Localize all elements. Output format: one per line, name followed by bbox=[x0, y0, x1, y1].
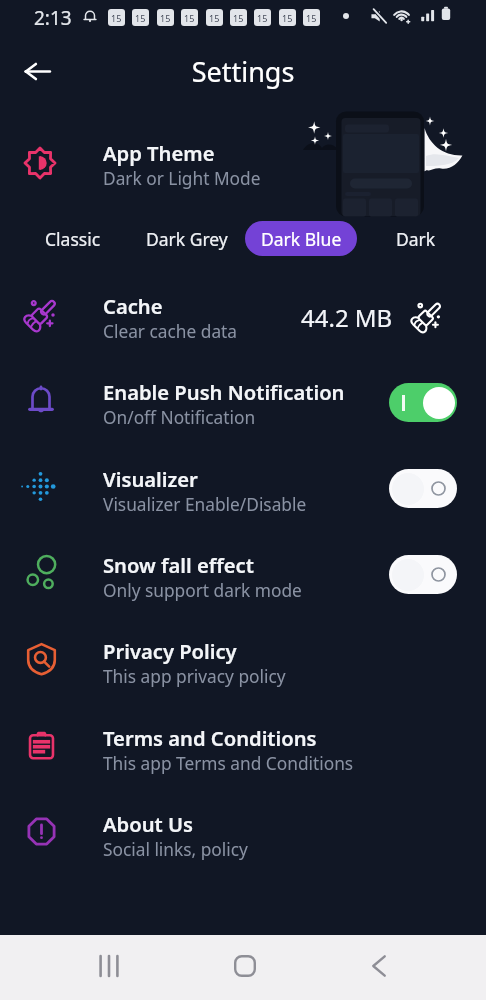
staticText: Snow fall effect bbox=[103, 551, 254, 579]
staticText: Enable Push Notification bbox=[103, 378, 345, 406]
staticText: 15 bbox=[257, 12, 268, 24]
staticText: Dark Blue bbox=[261, 227, 342, 251]
staticText: 15 bbox=[111, 12, 122, 24]
staticText: Dark or Light Mode bbox=[103, 167, 261, 191]
button[interactable]: Back bbox=[355, 942, 403, 990]
button[interactable]: Cache bbox=[0, 285, 486, 371]
staticText: Privacy Policy bbox=[103, 637, 237, 665]
button[interactable]: Back bbox=[13, 47, 61, 95]
staticText: About Us bbox=[103, 810, 194, 838]
button[interactable]: Enable Push Notification bbox=[0, 371, 486, 457]
staticText: Visualizer Enable/Disable bbox=[103, 493, 307, 517]
staticText: Cache bbox=[103, 292, 163, 320]
staticText: Clear cache data bbox=[103, 320, 238, 344]
button[interactable]: Visualizer bbox=[0, 458, 486, 544]
button[interactable]: Dark Grey bbox=[130, 221, 243, 256]
staticText: Dark bbox=[396, 227, 436, 251]
staticText: 15 bbox=[233, 12, 244, 24]
staticText: This app Terms and Conditions bbox=[103, 752, 354, 776]
staticText: Classic bbox=[45, 227, 101, 251]
staticText: 15 bbox=[282, 12, 293, 24]
staticText: 2:13 bbox=[34, 5, 72, 31]
button[interactable]: Home bbox=[221, 942, 269, 990]
button[interactable]: Terms and Conditions bbox=[0, 717, 486, 803]
button[interactable]: Enable Push Notification toggle bbox=[389, 383, 457, 422]
staticText: 15 bbox=[184, 12, 195, 24]
staticText: This app privacy policy bbox=[103, 665, 286, 689]
button[interactable]: Toggle off bbox=[389, 555, 457, 594]
staticText: Social links, policy bbox=[103, 838, 248, 862]
staticText: Settings bbox=[0, 53, 486, 90]
staticText: 44.2 MB bbox=[301, 301, 393, 334]
staticText: Only support dark mode bbox=[103, 579, 302, 603]
staticText: 15 bbox=[209, 12, 220, 24]
button[interactable]: Dark bbox=[379, 221, 452, 256]
button[interactable]: Privacy Policy bbox=[0, 630, 486, 716]
staticText: Visualizer bbox=[103, 465, 198, 493]
staticText: App Theme bbox=[103, 139, 215, 167]
button[interactable]: Classic bbox=[27, 221, 118, 256]
staticText: 15 bbox=[306, 12, 317, 24]
button[interactable]: Snow fall effect bbox=[0, 544, 486, 630]
staticText: Terms and Conditions bbox=[103, 724, 317, 752]
staticText: 15 bbox=[135, 12, 146, 24]
staticText: Dark Grey bbox=[146, 227, 228, 251]
button[interactable]: Dark Blue bbox=[245, 221, 357, 256]
staticText: On/off Notification bbox=[103, 406, 256, 430]
button[interactable]: Toggle off bbox=[389, 469, 457, 508]
button[interactable]: About Us bbox=[0, 803, 486, 889]
staticText: 15 bbox=[160, 12, 171, 24]
button[interactable]: Recents bbox=[85, 942, 133, 990]
